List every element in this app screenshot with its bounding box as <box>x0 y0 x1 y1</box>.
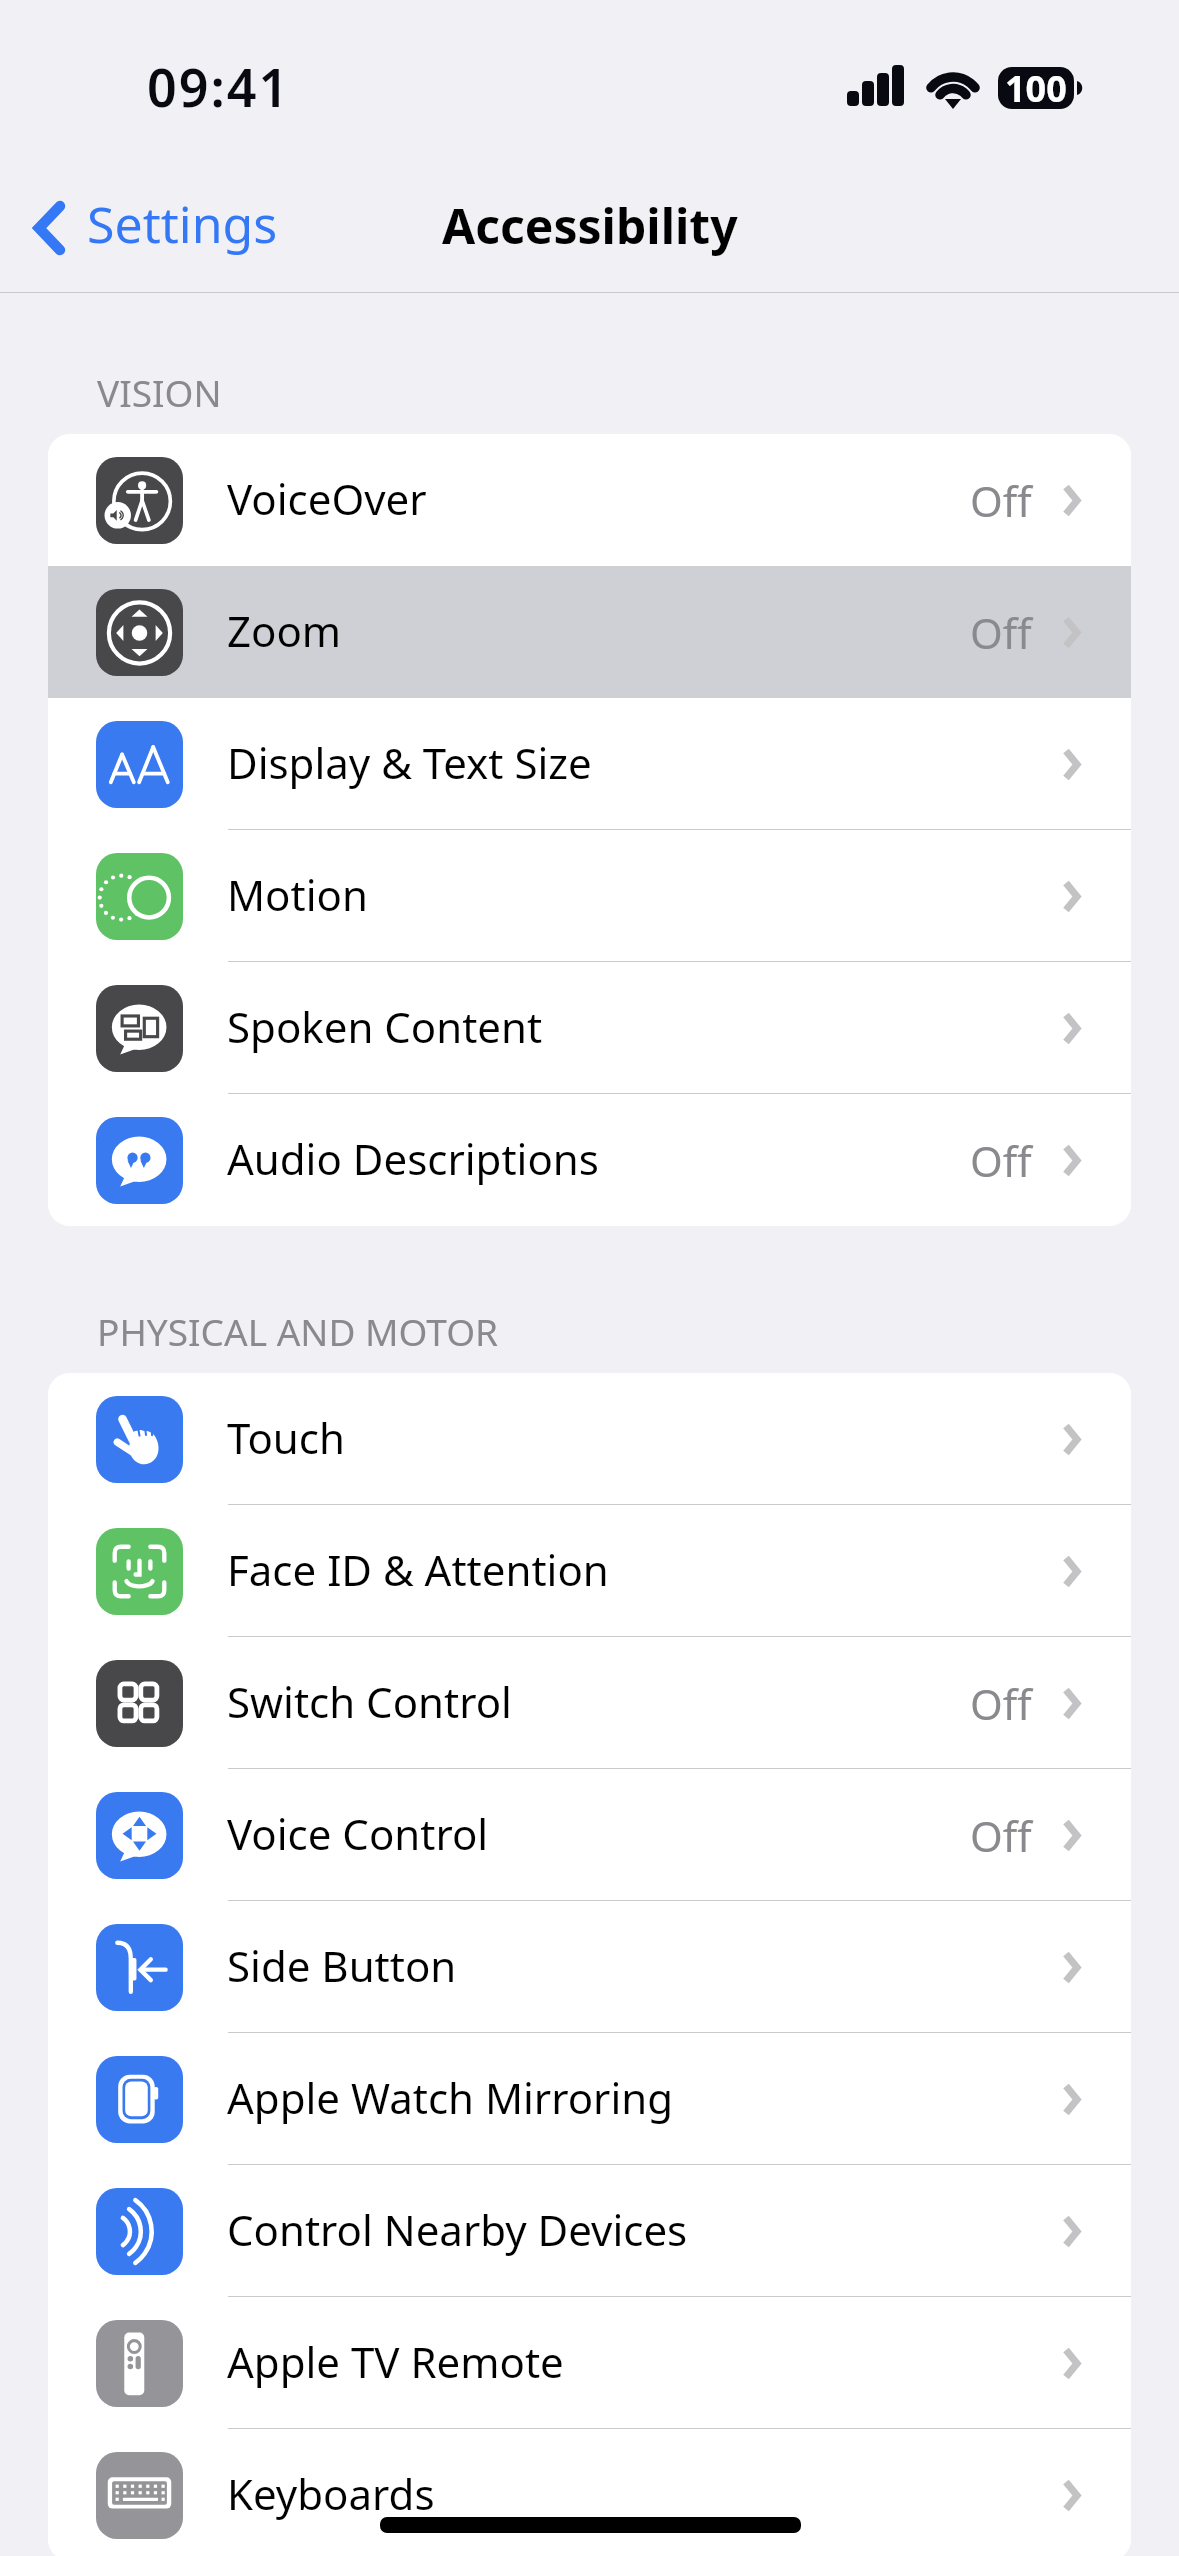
button[interactable]: Keyboards <box>48 2429 1131 2556</box>
staticText: Settings <box>87 190 278 258</box>
staticText: Face ID & Attention <box>227 1541 609 1598</box>
button[interactable]: Zoom <box>48 566 1131 698</box>
button[interactable]: Voice Control <box>48 1769 1131 1901</box>
staticText: Off <box>970 1675 1032 1732</box>
staticText: Off <box>970 1132 1032 1189</box>
staticText: Apple TV Remote <box>227 2333 564 2390</box>
staticText: PHYSICAL AND MOTOR <box>97 1306 499 1356</box>
staticText: Off <box>970 1807 1032 1864</box>
staticText: Touch <box>227 1409 345 1466</box>
button[interactable]: Face ID & Attention <box>48 1505 1131 1637</box>
staticText: Motion <box>227 866 368 923</box>
button[interactable]: Apple Watch Mirroring <box>48 2033 1131 2165</box>
staticText: 09:41 <box>147 51 291 122</box>
staticText: Voice Control <box>227 1805 489 1862</box>
staticText: Switch Control <box>227 1673 512 1730</box>
staticText: Control Nearby Devices <box>227 2201 688 2258</box>
other: Cellular, Wi-Fi and battery status <box>845 60 1095 115</box>
button[interactable]: Side Button <box>48 1901 1131 2033</box>
staticText: VISION <box>97 367 222 417</box>
button[interactable]: Control Nearby Devices <box>48 2165 1131 2297</box>
staticText: Audio Descriptions <box>227 1130 599 1187</box>
button[interactable]: Apple TV Remote <box>48 2297 1131 2429</box>
staticText: VoiceOver <box>227 470 427 527</box>
staticText: Accessibility <box>442 193 738 258</box>
button[interactable]: Audio Descriptions <box>48 1094 1131 1226</box>
staticText: Off <box>970 604 1032 661</box>
button[interactable]: Display & Text Size <box>48 698 1131 830</box>
button[interactable]: Spoken Content <box>48 962 1131 1094</box>
button[interactable]: VoiceOver <box>48 434 1131 566</box>
staticText: Spoken Content <box>227 998 543 1055</box>
button[interactable]: Motion <box>48 830 1131 962</box>
staticText: Keyboards <box>227 2465 435 2522</box>
staticText: Apple Watch Mirroring <box>227 2069 674 2126</box>
staticText: 100 <box>1005 64 1067 113</box>
staticText: Off <box>970 472 1032 529</box>
button[interactable]: Back to Settings <box>16 177 298 277</box>
staticText: Zoom <box>227 602 342 659</box>
button[interactable]: Touch <box>48 1373 1131 1505</box>
button[interactable]: Switch Control <box>48 1637 1131 1769</box>
staticText: Display & Text Size <box>227 734 592 791</box>
staticText: Side Button <box>227 1937 457 1994</box>
